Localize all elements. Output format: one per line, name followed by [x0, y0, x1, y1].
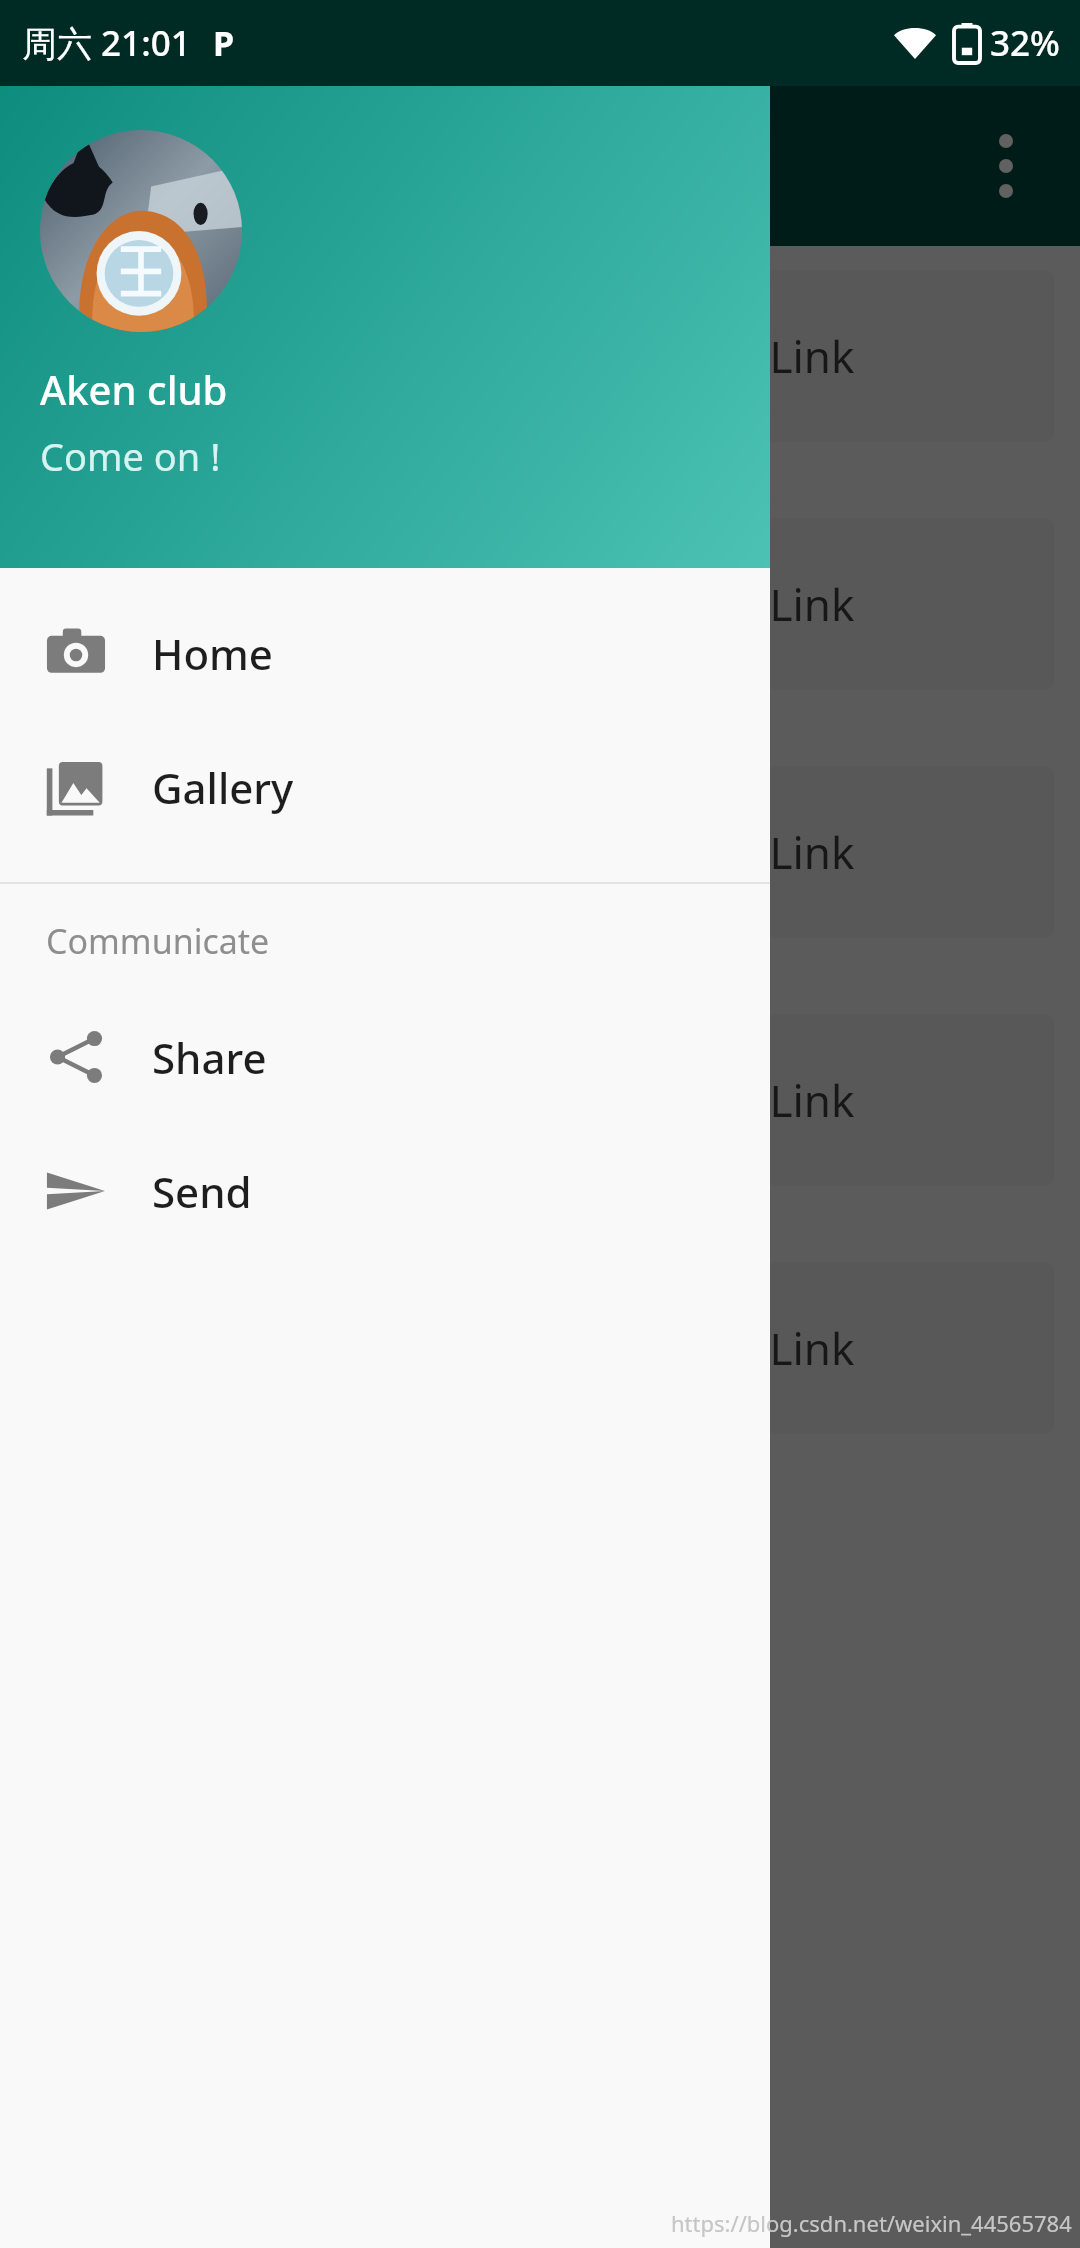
staticText: Link [225, 1070, 311, 1130]
button[interactable]: Link [26, 270, 510, 442]
button[interactable]: Link [570, 766, 1054, 938]
staticText: Link [769, 1070, 855, 1130]
button[interactable]: Link [570, 1262, 1054, 1434]
staticText: 32% [990, 19, 1060, 67]
staticText: Link [769, 574, 855, 634]
button[interactable]: More options [958, 118, 1054, 214]
button[interactable]: Link [26, 1014, 510, 1186]
staticText: Communicate [46, 918, 270, 964]
button[interactable]: Link [26, 518, 510, 690]
staticText: Aken club [40, 362, 228, 416]
button[interactable]: Link [570, 518, 1054, 690]
staticText: Share [152, 1029, 267, 1086]
staticText: Link [769, 326, 855, 386]
button[interactable]: Link [570, 1014, 1054, 1186]
staticText: Link [769, 822, 855, 882]
staticText: Link [769, 1318, 855, 1378]
button[interactable]: Link [26, 766, 510, 938]
button[interactable]: Send [0, 1124, 770, 1258]
staticText: Send [152, 1163, 252, 1220]
button[interactable]: Link [570, 270, 1054, 442]
button[interactable]: Gallery [0, 720, 770, 854]
button[interactable]: Home [0, 586, 770, 720]
staticText: 周六 21:01 [22, 19, 191, 67]
staticText: Come on ! [40, 430, 221, 482]
staticText: Gallery [152, 759, 294, 816]
staticText: https://blog.csdn.net/weixin_44565784 [671, 2208, 1072, 2238]
staticText: P [213, 20, 235, 66]
button[interactable]: Share [0, 990, 770, 1124]
button[interactable]: Close navigation drawer [0, 0, 1080, 2248]
staticText: Home [152, 625, 273, 682]
